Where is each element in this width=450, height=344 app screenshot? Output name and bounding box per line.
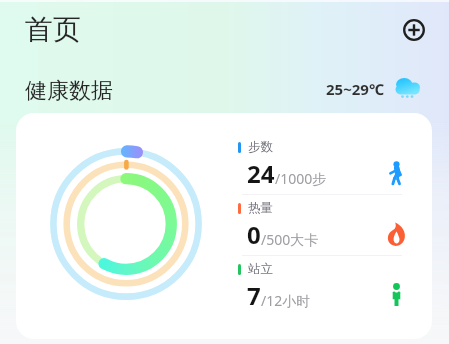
button[interactable]: 25~29℃ xyxy=(326,79,422,99)
staticText: /1000步 xyxy=(275,169,327,188)
staticText: 首页 xyxy=(25,12,81,47)
other: Stand hours xyxy=(392,283,401,307)
button[interactable]: Add xyxy=(396,12,432,48)
staticText: 热量 xyxy=(248,200,273,216)
button[interactable]: 热量 xyxy=(238,195,426,255)
staticText: 24 xyxy=(247,157,275,190)
staticText: /500大卡 xyxy=(261,230,319,249)
other: Steps xyxy=(389,161,404,185)
staticText: 步数 xyxy=(248,139,273,155)
staticText: 0 xyxy=(247,218,261,251)
other: Calories xyxy=(386,222,406,246)
other: Weather xyxy=(395,78,420,98)
staticText: /12小时 xyxy=(261,291,311,310)
staticText: 健康数据 xyxy=(25,77,113,105)
staticText: 7 xyxy=(247,279,261,312)
staticText: 站立 xyxy=(248,261,273,277)
button[interactable]: 步数 xyxy=(238,134,426,194)
staticText: 25~29℃ xyxy=(326,79,384,99)
button[interactable]: 站立 xyxy=(238,256,426,316)
